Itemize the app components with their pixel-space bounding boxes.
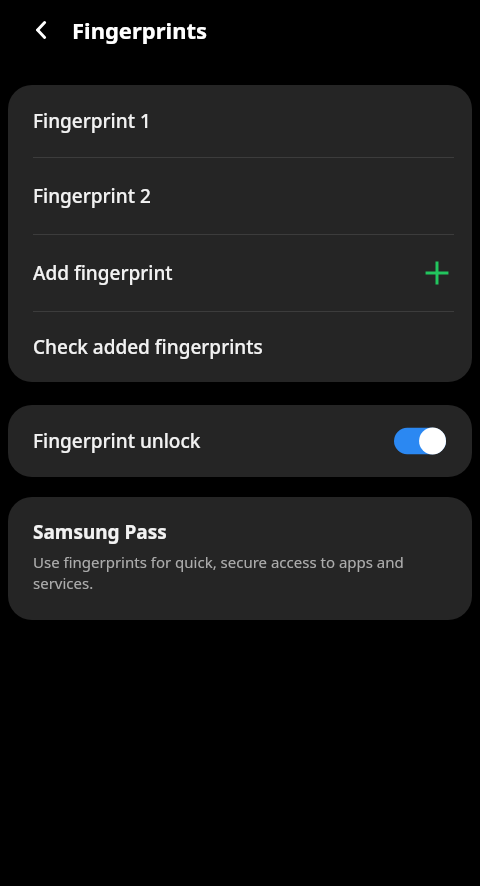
button[interactable]: Fingerprint unlock toggle [394, 426, 446, 456]
button[interactable]: Samsung Pass [8, 497, 472, 620]
button[interactable]: Fingerprint unlock [8, 405, 472, 477]
staticText: Samsung Pass [33, 519, 167, 545]
staticText: Use fingerprints for quick, secure acces… [33, 552, 422, 594]
button[interactable]: Add fingerprint [8, 235, 472, 311]
button[interactable]: Fingerprint 1 [8, 85, 472, 157]
button[interactable]: Check added fingerprints [8, 312, 472, 382]
staticText: Fingerprint unlock [33, 428, 201, 454]
staticText: Fingerprint 1 [33, 108, 151, 134]
staticText: Fingerprints [72, 15, 208, 45]
staticText: Fingerprint 2 [33, 183, 151, 209]
button[interactable]: Fingerprint 2 [8, 158, 472, 234]
other: Add [424, 260, 450, 286]
staticText: Add fingerprint [33, 260, 173, 286]
staticText: Check added fingerprints [33, 334, 263, 360]
button[interactable]: Navigate up [18, 6, 66, 54]
